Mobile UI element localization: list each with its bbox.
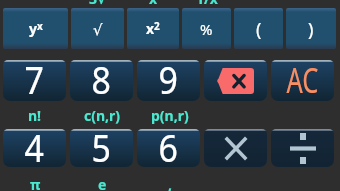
- button[interactable]: 6: [137, 129, 200, 167]
- staticText: ,: [168, 175, 172, 191]
- button[interactable]: √: [71, 8, 124, 49]
- button[interactable]: AC: [271, 60, 334, 101]
- staticText: 1/x: [196, 0, 218, 8]
- button[interactable]: 5: [70, 129, 133, 167]
- button[interactable]: 7: [3, 60, 66, 101]
- staticText: x: [149, 0, 158, 8]
- staticText: π: [30, 175, 41, 191]
- button[interactable]: 4: [3, 129, 66, 167]
- button[interactable]: %: [182, 8, 231, 49]
- staticText: yx: [29, 19, 43, 38]
- staticText: 3√: [89, 0, 107, 8]
- staticText: 5: [91, 129, 111, 167]
- staticText: (: [256, 17, 262, 42]
- staticText: 8: [91, 60, 111, 101]
- staticText: 4: [24, 129, 44, 167]
- button[interactable]: yx: [3, 8, 68, 49]
- button[interactable]: ): [286, 8, 336, 49]
- staticText: %: [200, 19, 213, 39]
- staticText: p(n,r): [151, 106, 189, 125]
- staticText: ): [308, 17, 314, 42]
- staticText: e: [98, 175, 107, 191]
- button[interactable]: 8: [70, 60, 133, 101]
- staticText: 7: [24, 60, 44, 101]
- staticText: c(n,r): [84, 106, 121, 125]
- button[interactable]: (: [234, 8, 283, 49]
- button[interactable]: Backspace: [204, 60, 267, 101]
- button[interactable]: Divide: [271, 129, 334, 167]
- button[interactable]: x2: [127, 8, 179, 49]
- button[interactable]: 9: [137, 60, 200, 101]
- staticText: n!: [28, 106, 42, 125]
- staticText: AC: [286, 60, 319, 101]
- staticText: 6: [158, 129, 178, 167]
- staticText: √: [93, 21, 103, 38]
- button[interactable]: Multiply: [204, 129, 267, 167]
- staticText: 9: [158, 60, 178, 101]
- staticText: x2: [146, 19, 160, 38]
